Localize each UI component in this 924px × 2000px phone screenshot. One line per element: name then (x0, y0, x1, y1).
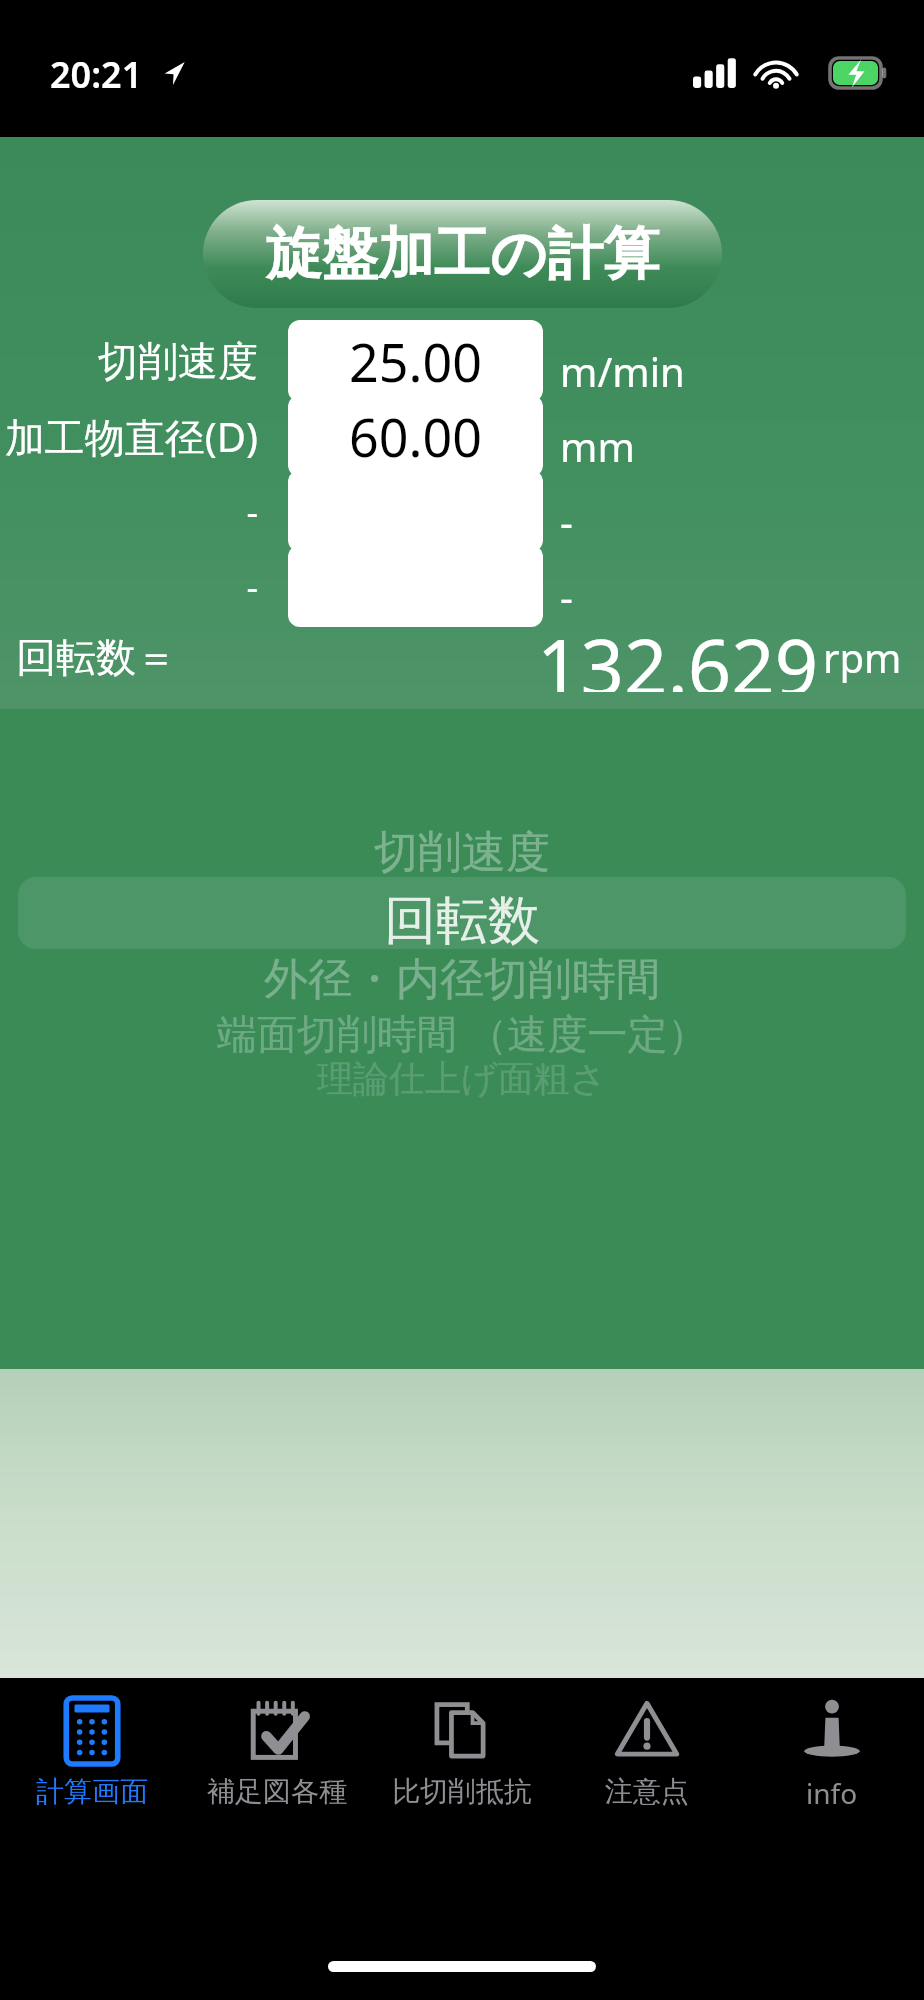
button[interactable]: 補足図各種 (184, 1678, 369, 1838)
staticText: info (806, 1774, 858, 1812)
staticText: 旋盤加工の計算 (266, 219, 660, 290)
button[interactable]: 旋盤加工の計算 (203, 200, 722, 308)
staticText: rpm (823, 630, 902, 684)
button[interactable]: 理論仕上げ面粗さ (0, 1049, 924, 1107)
staticText: 切削速度 (374, 825, 550, 880)
button[interactable] (288, 470, 543, 552)
staticText: 132.629 (537, 614, 819, 692)
staticText: 端面切削時間 （速度一定） (217, 1005, 708, 1060)
button[interactable] (288, 545, 543, 627)
staticText: m/min (560, 344, 685, 398)
staticText: 60.00 (349, 401, 482, 472)
other: 補足図各種 (244, 1698, 310, 1764)
staticText: 切削速度 (0, 336, 258, 386)
staticText: mm (560, 419, 635, 473)
button[interactable]: 計算画面 (0, 1678, 184, 1838)
staticText: 回転数 (384, 888, 540, 954)
staticText: 回転数＝ (16, 632, 176, 682)
other: info (799, 1698, 865, 1764)
staticText: 20:21 (50, 50, 143, 99)
button[interactable]: 回転数 (0, 884, 924, 958)
staticText: 理論仕上げ面粗さ (317, 1056, 607, 1101)
button[interactable]: 切削速度 (0, 819, 924, 885)
staticText: 25.00 (349, 326, 482, 397)
other: 注意点 (614, 1698, 680, 1764)
button[interactable]: 外径・内径切削時間 (0, 946, 924, 1012)
staticText: 補足図各種 (207, 1774, 347, 1809)
staticText: 外径・内径切削時間 (264, 952, 660, 1007)
staticText: 注意点 (605, 1774, 689, 1809)
staticText: - (560, 494, 573, 548)
staticText: - (560, 569, 573, 623)
staticText: 計算画面 (36, 1774, 148, 1809)
other: 比切削抵抗 (429, 1698, 495, 1764)
staticText: - (0, 487, 258, 536)
button[interactable]: 比切削抵抗 (369, 1678, 554, 1838)
staticText: - (0, 562, 258, 611)
staticText: 加工物直径(D) (0, 409, 258, 464)
button[interactable]: info (739, 1678, 924, 1838)
button[interactable]: 端面切削時間 （速度一定） (0, 1001, 924, 1063)
button[interactable]: 注意点 (554, 1678, 739, 1838)
other: 計算画面 (59, 1698, 125, 1764)
button[interactable]: 60.00 (288, 395, 543, 477)
button[interactable]: 25.00 (288, 320, 543, 402)
staticText: 比切削抵抗 (392, 1774, 532, 1809)
